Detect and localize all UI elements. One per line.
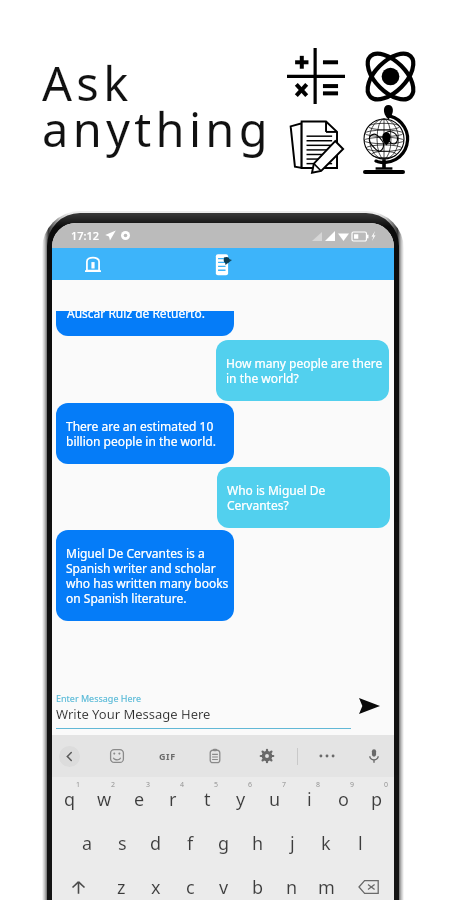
staticText: u bbox=[269, 787, 281, 812]
staticText: 17:12 bbox=[71, 228, 100, 243]
button[interactable]: i bbox=[292, 777, 326, 821]
staticText: k bbox=[321, 831, 331, 856]
staticText: y bbox=[236, 787, 246, 812]
button[interactable]: Shift bbox=[52, 865, 104, 900]
staticText: v bbox=[219, 875, 229, 900]
staticText: a bbox=[82, 831, 93, 856]
staticText: 0 bbox=[384, 780, 389, 790]
staticText: Auscar Ruiz de Retuerto. bbox=[67, 311, 205, 321]
button[interactable]: Send bbox=[354, 694, 384, 718]
button[interactable]: Who is Miguel De Cervantes? bbox=[217, 467, 390, 528]
button[interactable]: Back bbox=[57, 735, 81, 777]
staticText: w bbox=[97, 787, 112, 812]
button[interactable]: s bbox=[105, 821, 139, 865]
button[interactable]: Dictionary bbox=[74, 248, 112, 280]
staticText: Who is Miguel De Cervantes? bbox=[227, 482, 385, 513]
staticText: x bbox=[151, 875, 161, 900]
button[interactable]: k bbox=[309, 821, 343, 865]
staticText: q bbox=[64, 787, 76, 812]
button[interactable]: g bbox=[207, 821, 241, 865]
staticText: GIF bbox=[159, 750, 176, 762]
button[interactable]: Settings bbox=[254, 735, 280, 777]
button[interactable]: u bbox=[258, 777, 292, 821]
staticText: g bbox=[218, 831, 230, 856]
staticText: How many people are there in the world? bbox=[226, 355, 384, 386]
button[interactable]: Stickers bbox=[104, 735, 130, 777]
button[interactable]: More options bbox=[314, 735, 340, 777]
button[interactable]: e bbox=[122, 777, 156, 821]
staticText: l bbox=[358, 831, 363, 856]
button[interactable]: b bbox=[241, 865, 275, 900]
button[interactable]: n bbox=[275, 865, 309, 900]
button[interactable]: w bbox=[87, 777, 122, 821]
staticText: s bbox=[118, 831, 127, 856]
button[interactable]: x bbox=[139, 865, 173, 900]
staticText: 5 bbox=[214, 780, 219, 790]
button[interactable]: z bbox=[104, 865, 139, 900]
staticText: 6 bbox=[248, 780, 253, 790]
button[interactable]: t bbox=[190, 777, 224, 821]
button[interactable]: Notes bbox=[204, 248, 242, 280]
staticText: 7 bbox=[282, 780, 287, 790]
staticText: i bbox=[307, 787, 312, 812]
staticText: 4 bbox=[180, 780, 185, 790]
button[interactable]: o bbox=[326, 777, 360, 821]
staticText: 3 bbox=[146, 780, 151, 790]
staticText: e bbox=[134, 787, 145, 812]
button[interactable]: l bbox=[343, 821, 377, 865]
staticText: 1 bbox=[76, 780, 81, 790]
staticText: p bbox=[371, 787, 383, 812]
button[interactable]: Backspace bbox=[343, 865, 394, 900]
staticText: r bbox=[169, 787, 177, 812]
staticText: d bbox=[150, 831, 162, 856]
button[interactable]: Auscar Ruiz de Retuerto. bbox=[56, 311, 234, 336]
staticText: f bbox=[187, 831, 194, 856]
staticText: Ask anything bbox=[42, 51, 272, 161]
button[interactable]: c bbox=[173, 865, 207, 900]
button[interactable]: There are an estimated 10 billion people… bbox=[56, 403, 234, 464]
button[interactable]: y bbox=[224, 777, 258, 821]
button[interactable]: Clipboard bbox=[202, 735, 228, 777]
button[interactable]: q bbox=[52, 777, 87, 821]
button[interactable]: d bbox=[139, 821, 173, 865]
staticText: Write Your Message Here bbox=[56, 705, 211, 723]
staticText: o bbox=[338, 787, 349, 812]
button[interactable]: a bbox=[70, 821, 105, 865]
staticText: z bbox=[117, 875, 126, 900]
staticText: There are an estimated 10 billion people… bbox=[66, 418, 229, 449]
button[interactable]: j bbox=[275, 821, 309, 865]
button[interactable]: GIF bbox=[155, 735, 180, 777]
staticText: c bbox=[186, 875, 195, 900]
staticText: h bbox=[252, 831, 264, 856]
button[interactable]: Miguel De Cervantes is a Spanish writer … bbox=[56, 530, 234, 621]
staticText: m bbox=[318, 875, 335, 900]
staticText: b bbox=[252, 875, 264, 900]
button[interactable]: m bbox=[309, 865, 343, 900]
button[interactable]: v bbox=[207, 865, 241, 900]
button[interactable]: Voice input bbox=[361, 735, 387, 777]
staticText: 9 bbox=[350, 780, 355, 790]
staticText: Enter Message Here bbox=[56, 692, 142, 704]
staticText: Miguel De Cervantes is a Spanish writer … bbox=[66, 545, 229, 606]
button[interactable]: h bbox=[241, 821, 275, 865]
staticText: n bbox=[286, 875, 298, 900]
staticText: 2 bbox=[111, 780, 116, 790]
button[interactable]: f bbox=[173, 821, 207, 865]
staticText: j bbox=[290, 831, 295, 856]
staticText: t bbox=[204, 787, 211, 812]
button[interactable]: p bbox=[360, 777, 394, 821]
button[interactable]: r bbox=[156, 777, 190, 821]
staticText: 8 bbox=[316, 780, 321, 790]
button[interactable]: How many people are there in the world? bbox=[216, 340, 389, 401]
